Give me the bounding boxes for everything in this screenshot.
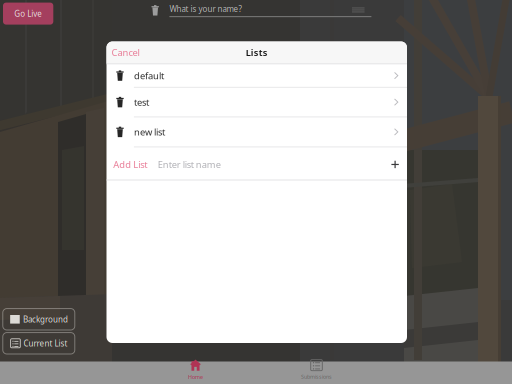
staticText: Lists: [246, 46, 268, 59]
staticText: Go Live: [14, 8, 42, 19]
button[interactable]: Submissions: [256, 361, 377, 384]
button[interactable]: new list: [106, 117, 407, 147]
staticText: What is your name?: [169, 3, 241, 14]
button[interactable]: default: [106, 64, 407, 88]
button[interactable]: Add List: [106, 147, 407, 177]
staticText: Background: [23, 314, 68, 325]
staticText: default: [134, 69, 164, 82]
button[interactable]: Cancel: [106, 41, 144, 64]
button[interactable]: Current List: [3, 333, 75, 354]
staticText: new list: [134, 126, 165, 138]
staticText: Submissions: [301, 373, 332, 380]
button[interactable]: Go Live: [3, 3, 53, 25]
staticText: test: [134, 96, 149, 108]
button[interactable]: Background: [3, 309, 75, 330]
staticText: Add List: [113, 158, 147, 171]
button[interactable]: test: [106, 88, 407, 117]
button[interactable]: Home: [135, 361, 256, 384]
staticText: Current List: [23, 338, 67, 349]
staticText: Enter list name: [158, 158, 221, 171]
staticText: Cancel: [111, 46, 139, 59]
staticText: Home: [188, 373, 203, 380]
